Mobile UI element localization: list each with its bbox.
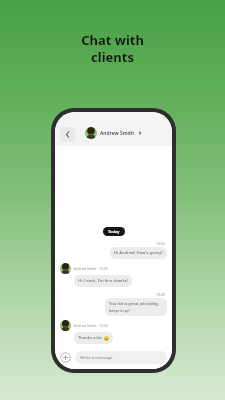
button[interactable]: Write a message [75,351,167,364]
button[interactable]: Andrew Smith [85,127,142,139]
staticText: Chat with clients [0,31,225,66]
button[interactable]: Back [60,127,75,142]
staticText: 10:28 [156,292,165,297]
staticText: Andrew Smith · 10:05 [74,266,108,271]
staticText: Hi Andrew! How's going? [114,250,163,256]
button[interactable]: Hi Andrew! How's going? [110,247,167,259]
button[interactable]: You did a great job today, keep it up! [105,298,167,316]
button[interactable]: Thanks a lot [74,332,113,344]
staticText: 10:04 [156,241,165,246]
staticText: Andrew Smith [100,130,135,137]
staticText: You did a great job today, keep it up! [109,301,163,313]
staticText: Andrew Smith · 10:32 [74,323,108,328]
staticText: Thanks a lot [78,335,102,341]
button[interactable]: Add attachment [60,352,71,363]
staticText: Write a message [80,355,113,361]
staticText: Hi Coach, I'm fine thanks! [78,278,128,284]
button[interactable]: Hi Coach, I'm fine thanks! [74,275,132,287]
staticText: Today [108,229,120,234]
